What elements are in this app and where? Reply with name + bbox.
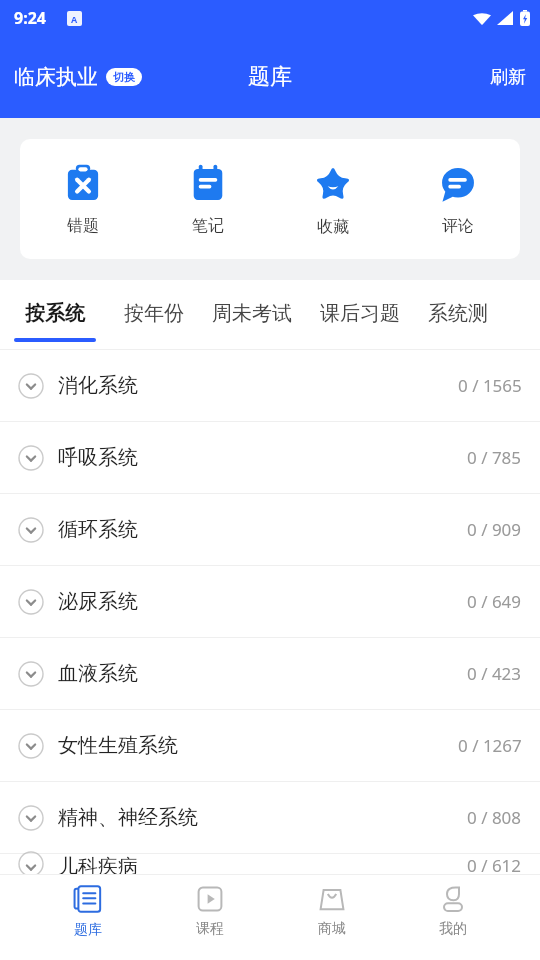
staticText: 消化系统: [58, 373, 138, 398]
button[interactable]: 收藏: [270, 150, 395, 249]
staticText: 按系统: [25, 301, 85, 326]
other: 题库: [72, 883, 104, 915]
staticText: 9:24: [14, 7, 46, 29]
staticText: 我的: [439, 920, 467, 938]
staticText: 课程: [196, 920, 224, 938]
staticText: 0 / 1565: [458, 374, 522, 397]
staticText: 0 / 785: [467, 446, 522, 469]
staticText: 呼吸系统: [58, 445, 138, 470]
button[interactable]: 我的: [418, 878, 488, 944]
button[interactable]: 按系统: [0, 280, 110, 350]
staticText: 刷新: [490, 66, 526, 89]
staticText: 系统测: [428, 301, 488, 326]
staticText: 0 / 649: [467, 590, 522, 613]
staticText: 评论: [442, 216, 474, 236]
staticText: 血液系统: [58, 661, 138, 686]
staticText: 循环系统: [58, 517, 138, 542]
button[interactable]: 评论: [395, 151, 520, 248]
staticText: 精神、神经系统: [58, 805, 198, 830]
button[interactable]: 泌尿系统: [0, 566, 540, 638]
button[interactable]: 临床执业: [14, 64, 142, 90]
button[interactable]: 呼吸系统: [0, 422, 540, 494]
staticText: 0 / 1267: [458, 734, 522, 757]
button[interactable]: 课程: [175, 878, 245, 944]
button[interactable]: 精神、神经系统: [0, 782, 540, 854]
other: 商城: [317, 884, 347, 914]
staticText: 商城: [318, 920, 346, 938]
button[interactable]: 儿科疾病: [0, 854, 540, 874]
button[interactable]: 血液系统: [0, 638, 540, 710]
staticText: 收藏: [317, 217, 349, 237]
button[interactable]: 课后习题: [306, 280, 414, 350]
button[interactable]: 刷新: [476, 58, 540, 97]
other: 我的: [438, 884, 468, 914]
staticText: 临床执业: [14, 64, 98, 90]
staticText: 女性生殖系统: [58, 733, 178, 758]
staticText: 错题: [67, 216, 99, 236]
button[interactable]: 系统测: [414, 280, 502, 350]
button[interactable]: 笔记: [145, 151, 270, 248]
staticText: 笔记: [192, 216, 224, 236]
button[interactable]: 消化系统: [0, 350, 540, 422]
staticText: 题库: [74, 921, 102, 939]
button[interactable]: 周未考试: [198, 280, 306, 350]
button[interactable]: 题库: [52, 877, 124, 945]
staticText: 课后习题: [320, 301, 400, 326]
button[interactable]: 错题: [20, 151, 145, 248]
staticText: A: [71, 13, 78, 25]
button[interactable]: 按年份: [110, 280, 198, 350]
staticText: 切换: [113, 70, 135, 84]
staticText: 泌尿系统: [58, 589, 138, 614]
button[interactable]: 商城: [297, 878, 367, 944]
staticText: 题库: [248, 63, 292, 91]
staticText: 0 / 612: [467, 854, 522, 874]
other: 课程: [195, 884, 225, 914]
button[interactable]: 女性生殖系统: [0, 710, 540, 782]
staticText: 0 / 909: [467, 518, 522, 541]
staticText: 周未考试: [212, 301, 292, 326]
staticText: 按年份: [124, 301, 184, 326]
staticText: 儿科疾病: [58, 854, 138, 874]
staticText: 0 / 423: [467, 662, 522, 685]
button[interactable]: 循环系统: [0, 494, 540, 566]
staticText: 0 / 808: [467, 806, 522, 829]
